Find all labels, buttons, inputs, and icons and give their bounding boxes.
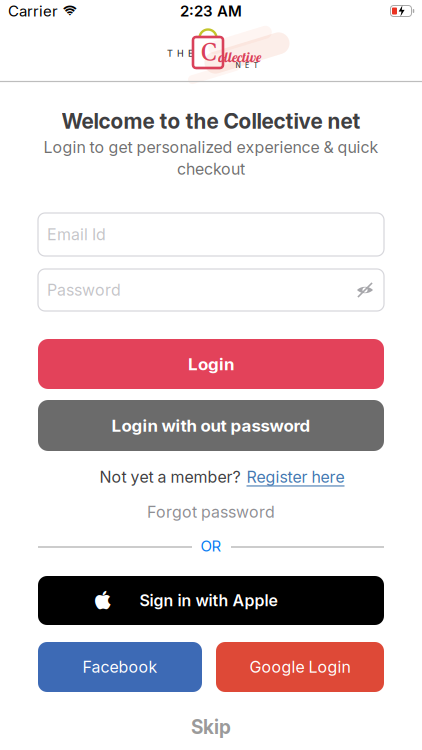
staticText: Login	[188, 354, 234, 374]
staticText: Skip	[191, 716, 231, 738]
staticText: 	[63, 5, 77, 17]
button[interactable]: Forgot password	[147, 503, 275, 521]
staticText: Register here	[246, 468, 344, 486]
staticText: Forgot password	[147, 503, 275, 521]
staticText: 2:23 AM	[180, 2, 242, 20]
staticText: 	[95, 590, 111, 610]
staticText: Password	[47, 281, 121, 299]
staticText: OR	[200, 537, 221, 555]
staticText: Email Id	[47, 225, 106, 244]
button[interactable]: Login	[38, 339, 384, 389]
staticText: Sign in with Apple	[139, 591, 277, 610]
staticText: Facebook	[82, 658, 157, 676]
staticText: Login with out password	[111, 415, 310, 436]
button[interactable]: 	[38, 576, 384, 625]
button[interactable]: Google Login	[216, 642, 384, 692]
staticText: ollective	[218, 48, 262, 66]
staticText: NET	[235, 61, 258, 70]
staticText: THE	[167, 48, 193, 59]
staticText: Carrier	[8, 2, 58, 20]
staticText: Google Login	[249, 658, 350, 676]
staticText: checkout	[177, 159, 245, 178]
button[interactable]: Facebook	[38, 642, 202, 692]
staticText: Not yet a member?	[99, 468, 240, 486]
staticText: Welcome to the Collective net	[61, 109, 360, 133]
staticText: C	[201, 38, 217, 69]
button[interactable]: Skip	[191, 716, 231, 738]
staticText: Login to get personalized experience & q…	[43, 138, 378, 156]
button[interactable]: Register here	[246, 468, 344, 486]
button[interactable]: Show password	[355, 280, 375, 300]
button[interactable]: Login with out password	[38, 400, 384, 451]
